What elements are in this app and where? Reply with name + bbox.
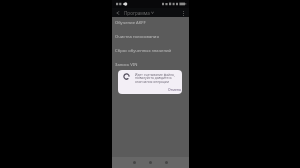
button[interactable]: Очистка голосования — [112, 30, 189, 44]
button[interactable]: Обучение AKFF — [112, 16, 189, 30]
staticText: Идет считывание файла, пожалуйста дождит… — [135, 72, 181, 84]
button[interactable]: Back — [114, 9, 121, 16]
button[interactable]: Сброс обученных значений — [112, 44, 189, 58]
button[interactable]: Home — [146, 158, 154, 166]
button[interactable]: More options — [179, 9, 187, 17]
button[interactable]: Отмена — [166, 86, 182, 93]
button[interactable]: Back — [130, 158, 138, 166]
staticText: Сброс обученных значений — [115, 48, 172, 54]
staticText: Запись VIN — [115, 62, 138, 68]
button[interactable]: Запись VIN — [112, 58, 189, 72]
staticText: Обучение AKFF — [115, 20, 146, 26]
staticText: Программа — [124, 10, 150, 16]
staticText: Отмена — [168, 87, 181, 92]
button[interactable]: Recents — [162, 158, 170, 166]
staticText: Очистка голосования — [115, 34, 159, 40]
